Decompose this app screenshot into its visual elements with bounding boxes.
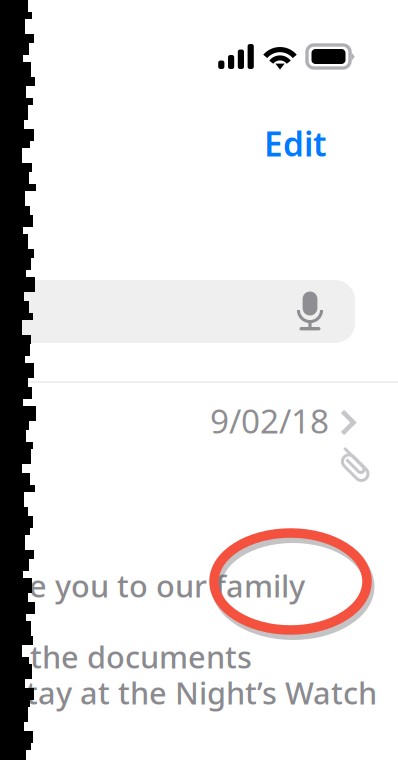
- staticText: e you to our family: [29, 565, 305, 606]
- staticText: Edit: [264, 121, 327, 166]
- staticText: the documents: [30, 636, 252, 677]
- staticText: 9/02/18: [210, 398, 329, 443]
- button[interactable]: [0, 280, 355, 343]
- button[interactable]: 9/02/18: [0, 400, 398, 740]
- staticText: tay at the Night’s Watch: [26, 672, 377, 713]
